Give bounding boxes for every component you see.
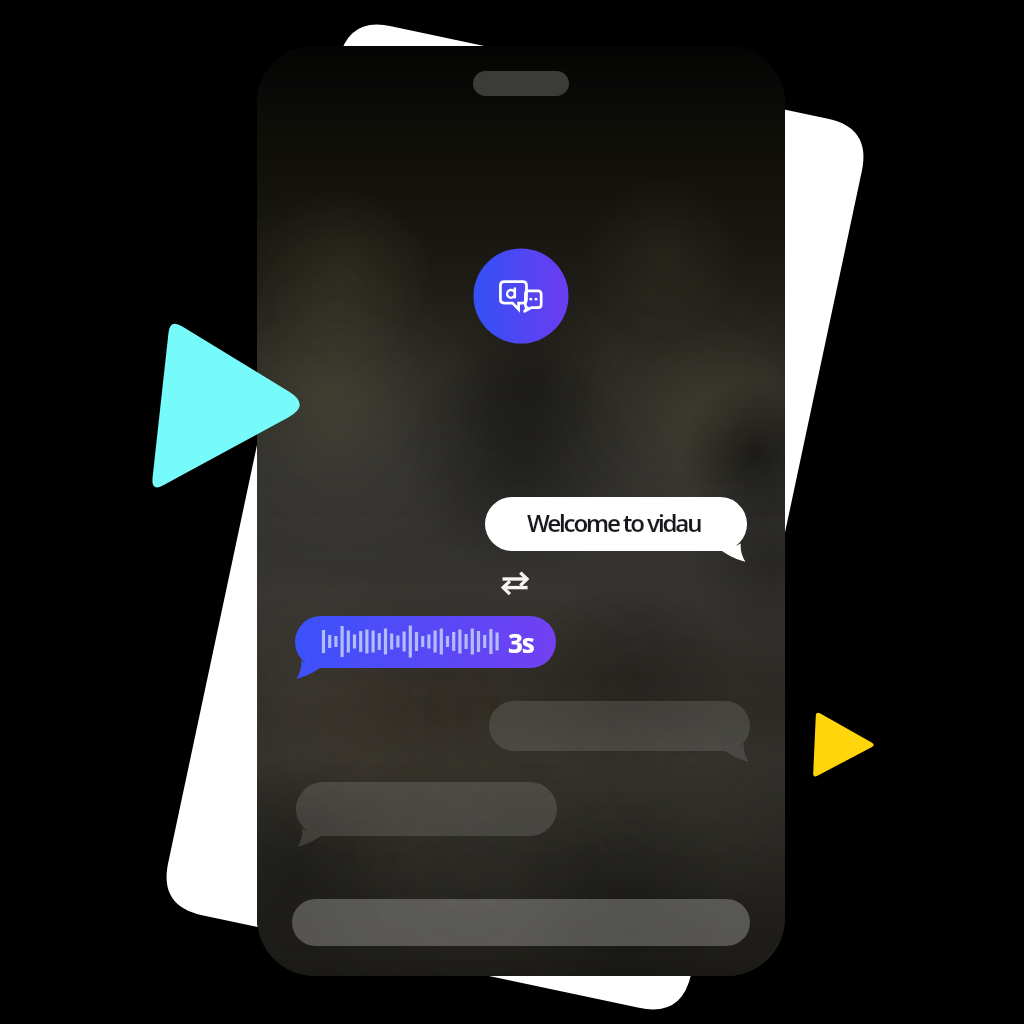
button[interactable]: Swap languages — [497, 567, 531, 600]
staticText: Welcome to vidau — [527, 506, 701, 539]
button[interactable]: Translate chat — [474, 249, 569, 344]
staticText: 3s — [508, 625, 534, 660]
button[interactable] — [485, 496, 747, 552]
button[interactable]: Play voice message, 3 seconds — [294, 616, 556, 669]
